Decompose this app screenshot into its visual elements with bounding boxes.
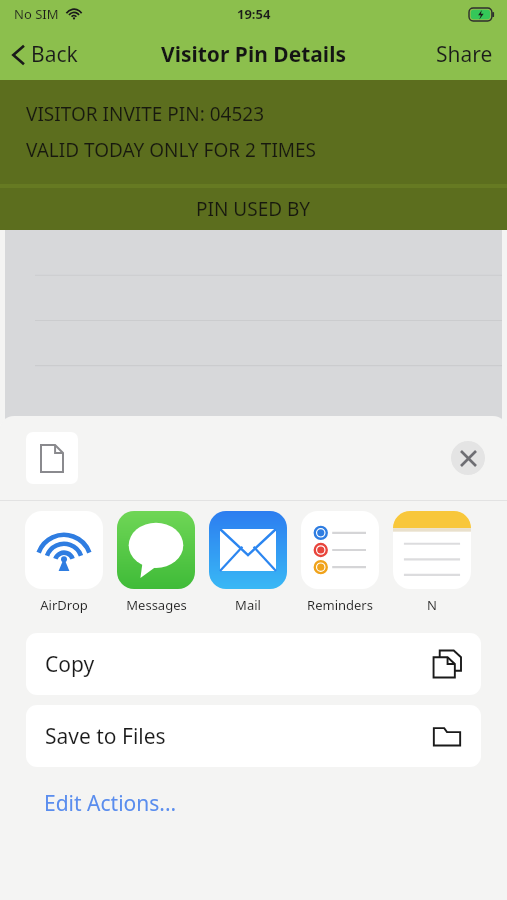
staticText: Reminders: [307, 596, 373, 614]
staticText: Share: [436, 40, 493, 69]
staticText: VISITOR INVITE PIN: 04523: [26, 101, 265, 127]
button[interactable]: Save to Files: [26, 705, 481, 767]
button[interactable]: Reminders: [301, 511, 379, 614]
staticText: PIN USED BY: [196, 196, 311, 222]
staticText: N: [427, 596, 437, 614]
staticText: VALID TODAY ONLY FOR 2 TIMES: [26, 137, 317, 163]
staticText: Visitor Pin Details: [161, 40, 346, 69]
staticText: No SIM: [14, 5, 59, 23]
button[interactable]: Share: [422, 30, 507, 79]
button[interactable]: N: [393, 511, 471, 614]
staticText: Edit Actions...: [44, 789, 177, 818]
button[interactable]: Back: [0, 32, 90, 77]
staticText: Back: [31, 40, 78, 69]
button[interactable]: Messages: [117, 511, 195, 614]
button[interactable]: Document preview: [26, 432, 78, 484]
button[interactable]: Edit Actions...: [0, 783, 507, 828]
button[interactable]: Close: [451, 441, 485, 475]
staticText: Mail: [235, 596, 261, 614]
staticText: Messages: [126, 596, 187, 614]
button[interactable]: Mail: [209, 511, 287, 614]
staticText: AirDrop: [40, 596, 88, 614]
staticText: Save to Files: [45, 722, 166, 751]
staticText: Copy: [45, 650, 95, 679]
staticText: 19:54: [237, 5, 271, 23]
button[interactable]: AirDrop: [25, 511, 103, 614]
button[interactable]: Copy: [26, 633, 481, 695]
